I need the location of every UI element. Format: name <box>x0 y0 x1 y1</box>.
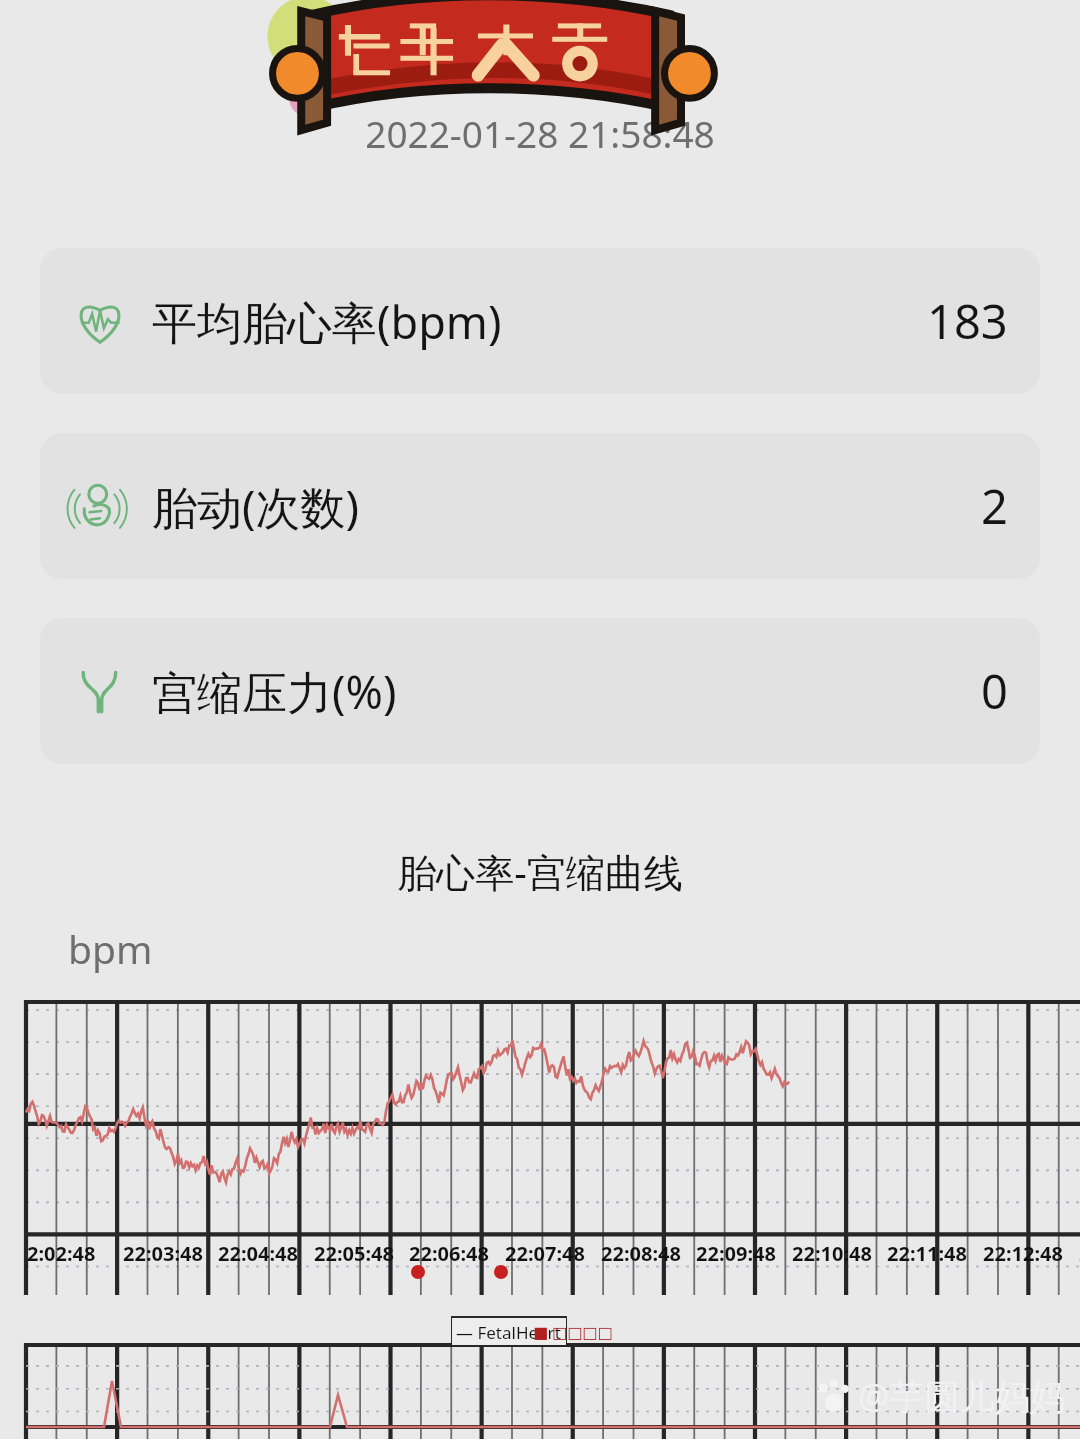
staticText: 22:11:48 <box>887 1240 967 1267</box>
staticText: 胎动(次数) <box>152 476 360 537</box>
other: Baidu watermark <box>816 1378 852 1414</box>
staticText: 2:02:48 <box>27 1240 96 1267</box>
staticText: 2 <box>981 474 1008 538</box>
staticText: 22:10:48 <box>792 1240 872 1267</box>
staticText: bpm <box>68 922 153 975</box>
staticText: 22:12:48 <box>983 1240 1063 1267</box>
staticText: 22:03:48 <box>123 1240 203 1267</box>
staticText: @芋圆儿妈妈 <box>858 1372 1065 1420</box>
staticText: 宫缩压力(%) <box>152 661 397 722</box>
button[interactable]: 平均胎心率(bpm) <box>40 248 1040 394</box>
staticText: ■ □□□□ <box>533 1321 613 1343</box>
staticText: 22:09:48 <box>696 1240 776 1267</box>
staticText: 平均胎心率(bpm) <box>152 291 502 352</box>
staticText: 22:04:48 <box>218 1240 298 1267</box>
staticText: 胎心率-宫缩曲线 <box>0 845 1080 898</box>
staticText: 22:08:48 <box>601 1240 681 1267</box>
button[interactable]: 胎动(次数) <box>40 433 1040 579</box>
staticText: 2022-01-28 21:58:48 <box>0 108 1080 158</box>
staticText: 22:07:48 <box>505 1240 585 1267</box>
staticText: 22:06:48 <box>409 1240 489 1267</box>
button[interactable]: 宫缩压力(%) <box>40 618 1040 764</box>
staticText: 22:05:48 <box>314 1240 394 1267</box>
staticText: 0 <box>981 659 1008 723</box>
staticText: — FetalHeart <box>456 1321 561 1344</box>
staticText: 183 <box>927 289 1008 353</box>
staticText: 22:13:48 <box>1079 1240 1080 1267</box>
